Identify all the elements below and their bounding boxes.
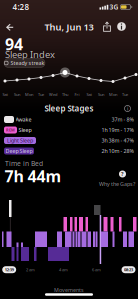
staticText: Sleep Stages — [44, 103, 93, 114]
staticText: 94 — [5, 33, 23, 55]
staticText: Time in Bed — [5, 159, 43, 168]
staticText: 3h 38m - 47% — [101, 137, 133, 144]
staticText: Tue — [38, 92, 44, 97]
staticText: Why the Gaps? — [99, 180, 135, 188]
staticText: 2h 10m - 28% — [101, 147, 133, 155]
button[interactable]: Steady streak — [0, 0, 138, 299]
staticText: Fri — [74, 92, 79, 97]
staticText: Mon — [109, 92, 117, 97]
staticText: Sleep — [18, 126, 31, 134]
staticText: Sun — [14, 92, 20, 97]
staticText: Light Sleep — [7, 137, 33, 144]
button[interactable]: 12:39 — [0, 0, 138, 299]
staticText: 6 am — [92, 267, 101, 272]
staticText: Sat — [86, 92, 91, 97]
staticText: 7h 44m — [4, 165, 61, 187]
staticText: 08:23 — [124, 267, 133, 272]
staticText: 12:39 — [5, 267, 14, 272]
staticText: Thu — [62, 92, 68, 97]
staticText: 4:28 — [12, 2, 29, 12]
staticText: Wed — [49, 92, 57, 97]
staticText: Thu, Jun 13 — [44, 21, 93, 33]
staticText: Steady streak — [10, 59, 44, 67]
button[interactable] — [0, 0, 138, 299]
staticText: REM — [6, 127, 15, 133]
button[interactable] — [0, 0, 138, 299]
staticText: 3G — [109, 3, 118, 11]
staticText: Deep Sleep — [5, 147, 32, 155]
staticText: Tue — [122, 92, 128, 97]
staticText: 37m - 8% — [111, 116, 133, 123]
button[interactable]: i — [0, 0, 138, 299]
button[interactable]: ? — [0, 0, 138, 299]
button[interactable] — [0, 0, 138, 299]
staticText: 2 am — [26, 267, 35, 272]
staticText: Sat — [2, 92, 7, 97]
staticText: Sleep Index — [5, 48, 55, 61]
staticText: 4 am — [59, 267, 68, 272]
staticText: i — [127, 105, 128, 112]
button[interactable]: 08:23 — [0, 0, 138, 299]
staticText: Movements — [54, 286, 84, 294]
staticText: Awake — [15, 116, 31, 123]
staticText: Mon — [25, 92, 33, 97]
staticText: Sun — [98, 92, 104, 97]
staticText: 1h 19m - 17% — [101, 126, 133, 134]
staticText: ? — [121, 170, 124, 178]
